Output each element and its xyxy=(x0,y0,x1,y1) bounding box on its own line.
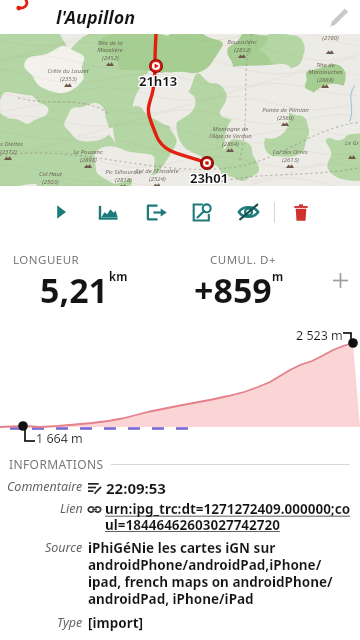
staticText: (2560) xyxy=(277,114,294,122)
button[interactable]: Hide xyxy=(238,201,259,223)
staticText: Crête du Lauzet xyxy=(47,67,89,75)
staticText: Tête de Maralouches xyxy=(308,61,343,76)
staticText: 21h13 xyxy=(138,73,177,91)
staticText: m xyxy=(272,269,284,285)
staticText: Montagne de l'Alpe de Verdun xyxy=(209,125,252,140)
button[interactable]: Add xyxy=(320,260,360,300)
staticText: [import] xyxy=(88,614,143,632)
staticText: urn:ipg_trc:dt=1271272409.000000;coul=18… xyxy=(105,500,354,534)
staticText: Pointe de Pémian xyxy=(262,106,309,114)
staticText: 22:09:53 xyxy=(106,478,166,498)
staticText: Source xyxy=(45,539,83,556)
staticText: Col de l'Eissalete xyxy=(135,167,179,175)
staticText: CUMUL. D+ xyxy=(210,252,277,268)
staticText: 21h13 xyxy=(139,72,178,90)
staticText: 23h01 xyxy=(190,169,229,186)
staticText: (2864) xyxy=(222,140,239,148)
staticText: Col des Orres xyxy=(272,148,308,156)
staticText: Lien xyxy=(60,500,83,517)
staticText: iPhiGéNie les cartes iGN sur androidPhon… xyxy=(88,539,354,608)
staticText: 23h01 xyxy=(191,169,230,186)
staticText: (2888) xyxy=(317,76,334,84)
staticText: Boussolenc xyxy=(227,38,257,46)
staticText: Commentaire xyxy=(7,478,83,495)
staticText: 21h13 xyxy=(139,71,178,89)
staticText: Tête de la Mazelière xyxy=(97,39,123,54)
staticText: 21h13 xyxy=(138,72,177,90)
staticText: 23h01 xyxy=(191,170,230,186)
button[interactable]: Graph xyxy=(98,201,118,223)
staticText: Le Gr xyxy=(345,139,359,147)
staticText: km xyxy=(109,269,128,285)
staticText: (2452) xyxy=(102,54,119,62)
button[interactable]: Find photo xyxy=(192,201,213,223)
staticText: 23h01 xyxy=(189,169,228,186)
staticText: (2503) xyxy=(42,178,59,186)
button[interactable]: Export xyxy=(146,201,167,223)
staticText: +859 xyxy=(194,267,272,313)
staticText: 21h13 xyxy=(140,71,179,89)
staticText: (2353) xyxy=(60,75,77,83)
staticText: Type xyxy=(57,614,83,631)
button[interactable]: Edit xyxy=(322,0,356,34)
staticText: (2832) xyxy=(234,46,251,54)
staticText: (2780) xyxy=(322,34,339,42)
staticText: (2818) xyxy=(115,176,132,184)
staticText: Le Pouzenc xyxy=(73,148,103,156)
button[interactable]: Delete xyxy=(294,201,308,223)
staticText: 21h13 xyxy=(139,73,178,91)
staticText: 23h01 xyxy=(190,168,229,186)
staticText: l'Aupillon xyxy=(56,5,136,30)
button[interactable]: Play xyxy=(55,201,67,223)
staticText: (2613) xyxy=(282,156,299,164)
staticText: LONGUEUR xyxy=(13,252,80,268)
staticText: (2372) xyxy=(0,148,17,156)
staticText: 2 523 m xyxy=(296,327,343,344)
staticText: Les Olettes xyxy=(0,140,23,148)
staticText: Col Haut xyxy=(39,170,62,178)
staticText: 23h01 xyxy=(189,170,228,186)
staticText: 23h01 xyxy=(191,168,230,186)
staticText: (2898) xyxy=(80,156,97,164)
staticText: 5,21 xyxy=(40,267,109,313)
staticText: 21h13 xyxy=(140,73,179,91)
staticText: 21h13 xyxy=(140,72,179,90)
staticText: (2524) xyxy=(149,175,166,183)
staticText: 1 664 m xyxy=(36,430,83,447)
staticText: INFORMATIONS xyxy=(9,456,104,472)
staticText: Pic Silhourais xyxy=(105,168,141,176)
staticText: 23h01 xyxy=(190,170,229,186)
staticText: 21h13 xyxy=(138,71,177,89)
staticText: 23h01 xyxy=(189,168,228,186)
